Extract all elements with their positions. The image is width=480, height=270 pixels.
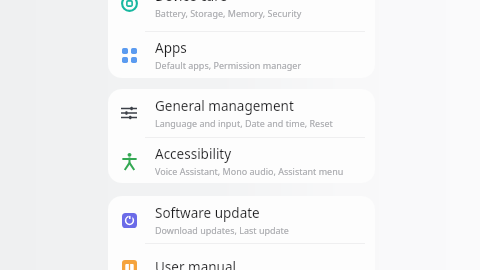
other: General management — [121, 105, 137, 121]
other: Apps — [122, 48, 137, 63]
other: User manual — [122, 260, 137, 270]
button[interactable]: Software update — [108, 196, 375, 243]
staticText: Accessibility — [155, 145, 232, 163]
staticText: General management — [155, 97, 294, 115]
button[interactable]: Device care — [108, 0, 375, 31]
staticText: User manual — [155, 258, 236, 270]
button[interactable]: User manual — [108, 244, 375, 270]
staticText: Apps — [155, 39, 187, 57]
staticText: Default apps, Permission manager — [155, 59, 302, 71]
staticText: Battery, Storage, Memory, Security — [155, 7, 302, 19]
staticText: Device care — [155, 0, 228, 5]
button[interactable]: Accessibility — [108, 138, 375, 183]
other: Accessibility — [121, 153, 138, 170]
button[interactable]: Apps — [108, 32, 375, 78]
other: Software update — [122, 213, 137, 228]
staticText: Software update — [155, 204, 260, 222]
staticText: Language and input, Date and time, Reset — [155, 117, 333, 129]
button[interactable]: General management — [108, 89, 375, 137]
staticText: Voice Assistant, Mono audio, Assistant m… — [155, 165, 344, 177]
other: Device care — [121, 0, 138, 12]
staticText: Download updates, Last update — [155, 224, 289, 236]
